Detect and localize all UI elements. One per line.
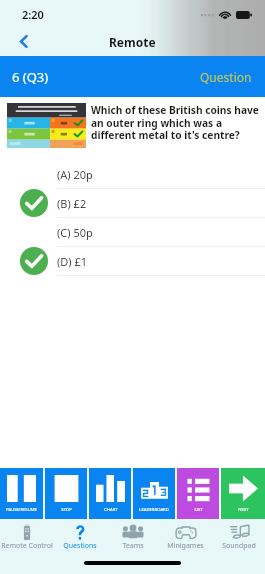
staticText: STOP xyxy=(61,507,72,513)
staticText: (D) £1 xyxy=(57,254,88,269)
button[interactable]: Minigames xyxy=(159,519,212,552)
button[interactable]: NEXT xyxy=(221,468,265,519)
staticText: Teams xyxy=(122,541,144,551)
staticText: Remote xyxy=(109,34,156,50)
staticText: Questions xyxy=(63,541,97,551)
staticText: LIST xyxy=(194,507,203,513)
staticText: 2:20 xyxy=(22,7,44,22)
staticText: Minigames xyxy=(167,541,204,551)
staticText: Soundpad xyxy=(222,541,256,551)
staticText: NEXT xyxy=(238,507,249,513)
button[interactable]: (C) 50p xyxy=(0,218,265,246)
button[interactable]: PAUSE/RESUME xyxy=(0,468,43,519)
button[interactable]: Remote Control xyxy=(0,519,53,552)
button[interactable]: (A) 20p xyxy=(0,160,265,188)
staticText: 6 (Q3) xyxy=(12,68,49,86)
staticText: Question xyxy=(200,69,252,85)
button[interactable]: (D) £1 xyxy=(0,247,265,275)
staticText: Which of these British coins have an out… xyxy=(91,103,262,142)
button[interactable]: (B) £2 xyxy=(0,189,265,217)
button[interactable]: Question xyxy=(188,61,265,93)
staticText: (A) 20p xyxy=(57,167,93,182)
staticText: CHART xyxy=(104,507,118,513)
button[interactable]: LEADERBOARD xyxy=(133,468,175,519)
staticText: (C) 50p xyxy=(57,225,93,240)
button[interactable]: LIST xyxy=(177,468,219,519)
button[interactable]: Questions xyxy=(53,519,106,552)
button[interactable]: Back xyxy=(10,28,37,55)
button[interactable]: Teams xyxy=(106,519,159,552)
button[interactable]: CHART xyxy=(89,468,131,519)
staticText: Remote Control xyxy=(1,541,53,551)
staticText: PAUSE/RESUME xyxy=(6,507,37,513)
staticText: (B) £2 xyxy=(57,196,87,211)
button[interactable]: Soundpad xyxy=(212,519,265,552)
button[interactable]: STOP xyxy=(45,468,87,519)
staticText: LEADERBOARD xyxy=(139,507,169,513)
